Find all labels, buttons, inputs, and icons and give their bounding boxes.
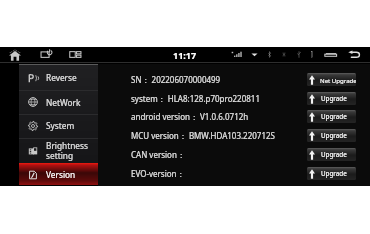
staticText: Upgrade bbox=[321, 112, 347, 121]
button[interactable]: Upgrade bbox=[307, 129, 356, 142]
staticText: MCU version： BMW.HDA103.220712S bbox=[131, 130, 275, 141]
staticText: 11:17 bbox=[173, 49, 197, 61]
button[interactable]: Net Upgrade bbox=[307, 73, 356, 86]
button[interactable]: Brightness setting bbox=[19, 138, 98, 163]
button[interactable]: Split screen bbox=[69, 48, 82, 61]
staticText: Upgrade bbox=[321, 169, 347, 178]
staticText: Upgrade bbox=[321, 150, 347, 159]
staticText: Upgrade bbox=[321, 131, 347, 140]
button[interactable]: Upgrade bbox=[307, 167, 356, 180]
staticText: android version： V1.0.6.0712h bbox=[131, 111, 249, 122]
button[interactable]: NetWork bbox=[19, 90, 98, 114]
staticText: NetWork bbox=[46, 97, 81, 108]
staticText: CAN version： bbox=[131, 149, 185, 160]
button[interactable]: Upgrade bbox=[307, 92, 356, 105]
button[interactable]: Reverse bbox=[19, 65, 98, 90]
staticText: Upgrade bbox=[321, 94, 347, 103]
staticText: Version bbox=[46, 169, 76, 180]
button[interactable]: Recent apps bbox=[324, 51, 338, 59]
staticText: Net Upgrade bbox=[320, 76, 356, 84]
button[interactable]: Back bbox=[348, 49, 361, 59]
button[interactable]: Version bbox=[19, 163, 98, 185]
staticText: SN： 202206070000499 bbox=[131, 74, 221, 85]
staticText: EVO-version： bbox=[131, 168, 185, 179]
button[interactable]: Upgrade bbox=[307, 148, 356, 161]
staticText: system： HLA8:128.p70pro220811 bbox=[131, 93, 260, 104]
button[interactable]: System bbox=[19, 114, 98, 137]
staticText: Reverse bbox=[46, 72, 77, 83]
staticText: Brightness setting bbox=[46, 140, 88, 161]
button[interactable]: Home bbox=[9, 49, 21, 61]
button[interactable]: Screen off bbox=[40, 48, 53, 61]
button[interactable]: Upgrade bbox=[307, 110, 356, 123]
staticText: System bbox=[46, 120, 75, 131]
